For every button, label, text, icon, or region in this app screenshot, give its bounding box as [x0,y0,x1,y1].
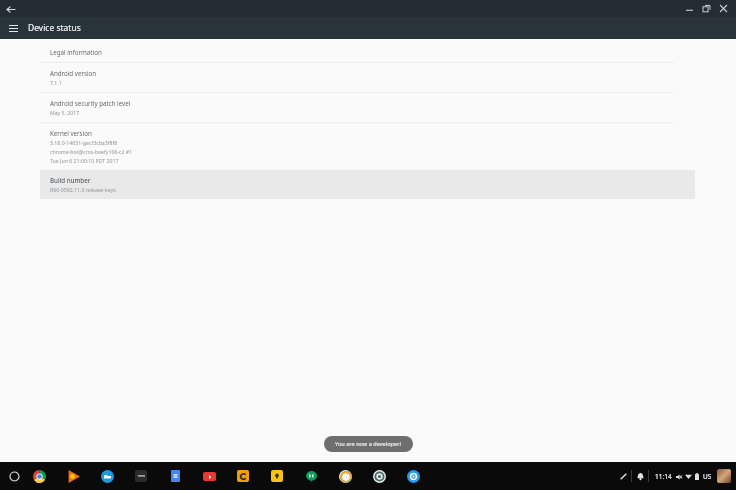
button[interactable]: Minimize [681,0,698,17]
staticText: Device status [28,22,81,34]
staticText: Kernel version [50,129,92,137]
button[interactable]: Files [97,466,117,486]
staticText: Android version [50,69,97,77]
button[interactable]: Camera [335,466,355,486]
button[interactable]: Notifications [632,468,648,484]
button[interactable]: Calendar [233,466,253,486]
staticText: US [703,472,712,481]
button[interactable]: Legal information [40,42,695,62]
staticText: Build number [50,176,91,184]
button[interactable]: Docs [165,466,185,486]
staticText: Tue Jun 6 21:00:10 PDT 2017 [50,157,119,164]
staticText: 7.1.1 [50,79,62,86]
button[interactable]: Android security patch level [40,93,695,122]
staticText: chrome-bot@cros-beefy106-c2 #1 [50,148,133,155]
button[interactable]: Terminal [131,466,151,486]
button[interactable]: Android version [40,63,695,92]
button[interactable]: Play Store [63,466,83,486]
button[interactable]: Stylus tools [615,468,631,484]
button[interactable]: Open navigation menu [5,20,21,36]
button[interactable]: 11:14 [653,472,714,481]
button[interactable]: Device status [403,466,423,486]
button[interactable]: Chrome [29,466,49,486]
button[interactable]: Account [717,469,731,483]
staticText: May 5, 2017 [50,109,80,116]
button[interactable]: Launcher [5,467,23,485]
button[interactable]: Hangouts [301,466,321,486]
staticText: Legal information [50,48,102,56]
staticText: R60-9592.11.0 release-keys [50,186,116,193]
button[interactable]: YouTube [199,466,219,486]
button[interactable]: Keep [267,466,287,486]
button[interactable]: Kernel version [40,123,695,170]
button[interactable]: Back [2,1,18,17]
staticText: Android security patch level [50,99,131,107]
button[interactable]: Build number [40,170,695,199]
button[interactable]: Close [715,0,732,17]
button[interactable]: Maximize [698,0,715,17]
staticText: You are now a developer! [335,440,402,448]
staticText: 3.18.0-14651-gecf3cba3f8f8 [50,139,118,146]
staticText: 11:14 [655,472,672,481]
button[interactable]: Settings [369,466,389,486]
